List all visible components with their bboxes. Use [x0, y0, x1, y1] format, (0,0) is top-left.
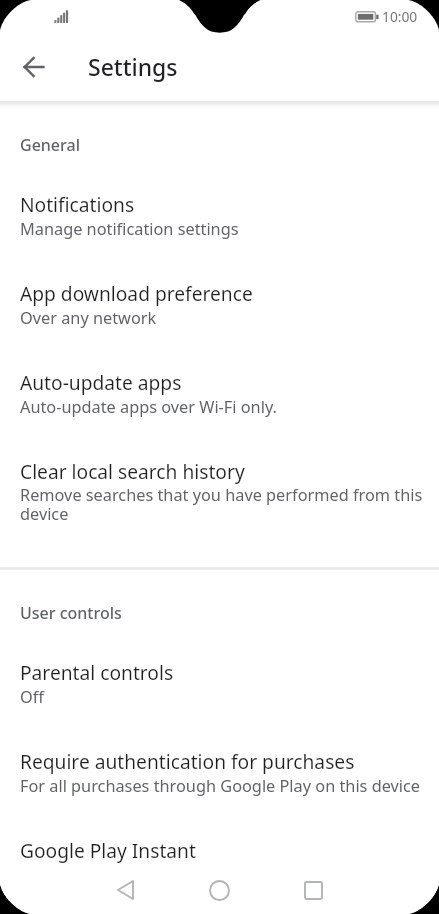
- button[interactable]: Back: [10, 44, 58, 92]
- staticText: Parental controls: [20, 659, 174, 685]
- button[interactable]: Clear local search history: [0, 441, 439, 550]
- staticText: Google Play Instant: [20, 837, 196, 863]
- staticText: Auto-update apps over Wi-Fi only.: [20, 396, 277, 418]
- button[interactable]: Google Play Instant: [0, 820, 439, 866]
- staticText: Manage notification settings: [20, 218, 239, 240]
- staticText: Off: [20, 686, 44, 708]
- staticText: Auto-update apps: [20, 369, 182, 395]
- staticText: 10:00: [382, 7, 418, 26]
- staticText: Over any network: [20, 307, 157, 329]
- staticText: Settings: [88, 51, 178, 82]
- button[interactable]: Back: [78, 866, 172, 914]
- button[interactable]: Notifications: [0, 174, 439, 263]
- button[interactable]: Home: [172, 866, 266, 914]
- button[interactable]: Auto-update apps: [0, 352, 439, 441]
- button[interactable]: App download preference: [0, 263, 439, 352]
- staticText: User controls: [20, 602, 122, 624]
- staticText: Clear local search history: [20, 458, 245, 484]
- button[interactable]: Require authentication for purchases: [0, 731, 439, 820]
- button[interactable]: Parental controls: [0, 642, 439, 731]
- staticText: Notifications: [20, 191, 135, 217]
- staticText: App download preference: [20, 280, 253, 306]
- staticText: Remove searches that you have performed …: [20, 484, 423, 525]
- staticText: Require authentication for purchases: [20, 748, 355, 774]
- staticText: For all purchases through Google Play on…: [20, 775, 421, 797]
- staticText: General: [20, 134, 80, 156]
- button[interactable]: Recent apps: [266, 866, 360, 914]
